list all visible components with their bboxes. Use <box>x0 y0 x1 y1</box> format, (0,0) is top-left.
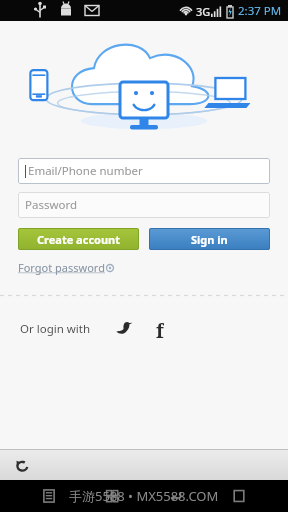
staticText: Create account <box>37 232 121 247</box>
staticText: f <box>156 318 164 340</box>
staticText: 2:37 PM <box>238 3 282 19</box>
staticText: Email/Phone number <box>28 163 143 179</box>
button[interactable]: Apps <box>97 481 127 511</box>
button[interactable]: Back <box>8 451 36 479</box>
button[interactable]: Recent apps <box>224 481 254 511</box>
button[interactable]: Create account <box>18 228 139 250</box>
staticText: Sign in <box>191 232 228 247</box>
button[interactable]: Back <box>161 481 191 511</box>
button[interactable]: Sign in <box>149 228 270 250</box>
button[interactable]: Login with Facebook <box>149 318 171 340</box>
staticText: Password <box>25 197 78 213</box>
staticText: 手游5588 • MX5588.COM <box>69 487 219 505</box>
staticText: Forgot password <box>18 260 105 275</box>
button[interactable]: Menu <box>34 481 64 511</box>
staticText: Or login with <box>20 321 91 337</box>
button[interactable]: Login with Twitter <box>113 318 135 340</box>
button[interactable]: Email/Phone number <box>18 158 270 184</box>
button[interactable]: Password <box>18 192 270 218</box>
button[interactable]: Forgot password <box>18 260 114 275</box>
staticText: 3G <box>196 4 211 19</box>
